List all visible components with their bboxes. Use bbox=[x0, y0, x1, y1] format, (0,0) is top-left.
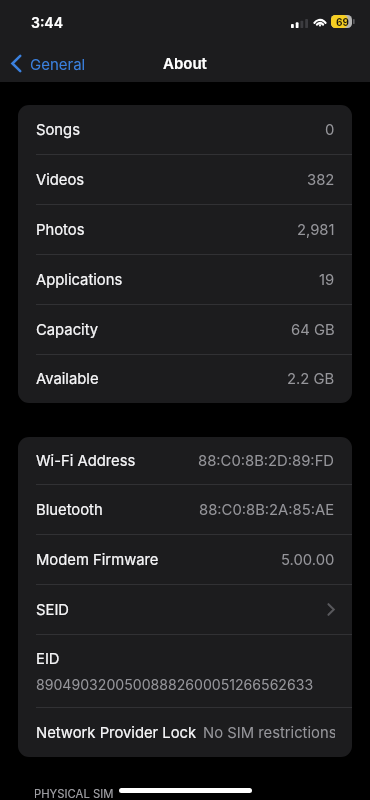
button[interactable]: Songs bbox=[18, 105, 352, 154]
staticText: 88:C0:8B:2A:85:AE bbox=[199, 501, 335, 519]
staticText: Songs bbox=[36, 121, 80, 139]
button[interactable]: EID bbox=[18, 635, 352, 707]
staticText: Capacity bbox=[36, 321, 99, 339]
staticText: SEID bbox=[36, 601, 70, 619]
staticText: Network Provider Lock bbox=[36, 724, 197, 742]
other: Cellular signal bbox=[291, 19, 308, 28]
button[interactable]: Applications bbox=[18, 255, 352, 304]
staticText: General bbox=[30, 55, 86, 73]
button[interactable]: Capacity bbox=[18, 305, 352, 354]
staticText: Photos bbox=[36, 221, 85, 239]
staticText: 19 bbox=[319, 271, 335, 289]
button[interactable]: Videos bbox=[18, 155, 352, 204]
button[interactable]: Available bbox=[18, 355, 352, 403]
staticText: PHYSICAL SIM bbox=[34, 787, 114, 800]
button[interactable]: Network Provider Lock bbox=[18, 708, 352, 757]
staticText: No SIM restrictions bbox=[203, 724, 335, 742]
staticText: Modem Firmware bbox=[36, 551, 159, 569]
staticText: EID bbox=[36, 650, 60, 668]
staticText: 64 GB bbox=[291, 321, 335, 339]
staticText: 0 bbox=[325, 121, 335, 139]
staticText: Wi-Fi Address bbox=[36, 452, 136, 470]
button[interactable]: Modem Firmware bbox=[18, 535, 352, 584]
staticText: Available bbox=[36, 370, 99, 388]
button[interactable]: SEID bbox=[18, 585, 352, 634]
staticText: Applications bbox=[36, 271, 123, 289]
staticText: 69 bbox=[336, 16, 349, 28]
staticText: 382 bbox=[307, 171, 335, 189]
staticText: 5.00.00 bbox=[281, 551, 335, 569]
staticText: Bluetooth bbox=[36, 501, 103, 519]
staticText: 88:C0:8B:2D:89:FD bbox=[198, 452, 335, 470]
staticText: 89049032005008882600051266562633 bbox=[36, 676, 314, 693]
button[interactable]: Photos bbox=[18, 205, 352, 254]
staticText: 2.2 GB bbox=[287, 370, 335, 388]
button[interactable]: Wi-Fi Address bbox=[18, 437, 352, 484]
staticText: About bbox=[163, 54, 207, 72]
button[interactable]: General bbox=[0, 49, 94, 78]
staticText: 3:44 bbox=[31, 14, 64, 31]
staticText: 2,981 bbox=[297, 221, 335, 239]
other: Wi-Fi bbox=[312, 15, 328, 27]
button[interactable]: Bluetooth bbox=[18, 485, 352, 534]
staticText: Videos bbox=[36, 171, 85, 189]
